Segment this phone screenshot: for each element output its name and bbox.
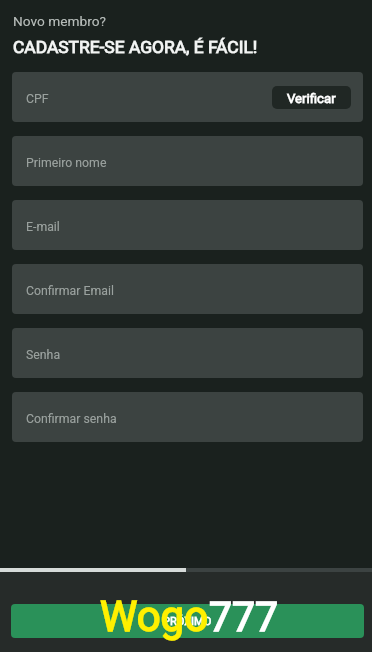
staticText: Confirmar Email [26,284,114,298]
staticText: Verificar [287,91,336,106]
button[interactable]: Verificar [272,86,351,109]
button[interactable]: Senha [12,328,363,378]
staticText: CADASTRE-SE AGORA, É FÁCIL! [13,37,258,57]
button[interactable]: CPF [12,72,363,122]
button[interactable]: Confirmar senha [12,392,363,442]
other: Progresso do cadastro [0,568,372,572]
button[interactable]: Confirmar Email [12,264,363,314]
staticText: Wogo [100,592,209,641]
staticText: Novo membro? [13,13,106,29]
staticText: PRÓXIMO [163,615,212,628]
staticText: Senha [26,348,61,362]
staticText: Primeiro nome [26,156,107,170]
button[interactable]: E-mail [12,200,363,250]
button[interactable]: PRÓXIMO [11,604,364,638]
button[interactable]: Primeiro nome [12,136,363,186]
staticText: CPF [26,92,49,106]
staticText: Confirmar senha [26,412,117,426]
staticText: E-mail [26,220,60,234]
staticText: 777 [209,593,279,641]
